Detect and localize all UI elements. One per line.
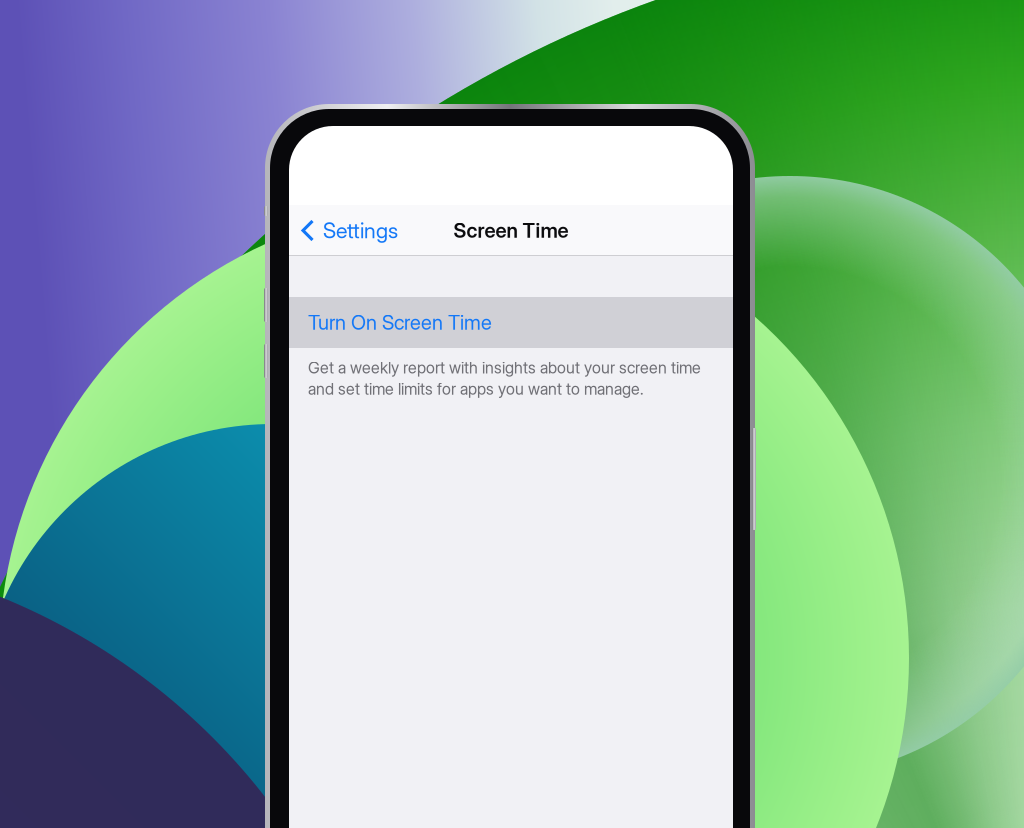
button[interactable]: Settings <box>289 205 398 256</box>
staticText: Settings <box>323 218 398 243</box>
staticText: Get a weekly report with insights about … <box>308 358 701 399</box>
staticText: Turn On Screen Time <box>308 310 492 335</box>
button[interactable]: Turn On Screen Time <box>289 297 733 348</box>
staticText: Screen Time <box>453 218 568 243</box>
